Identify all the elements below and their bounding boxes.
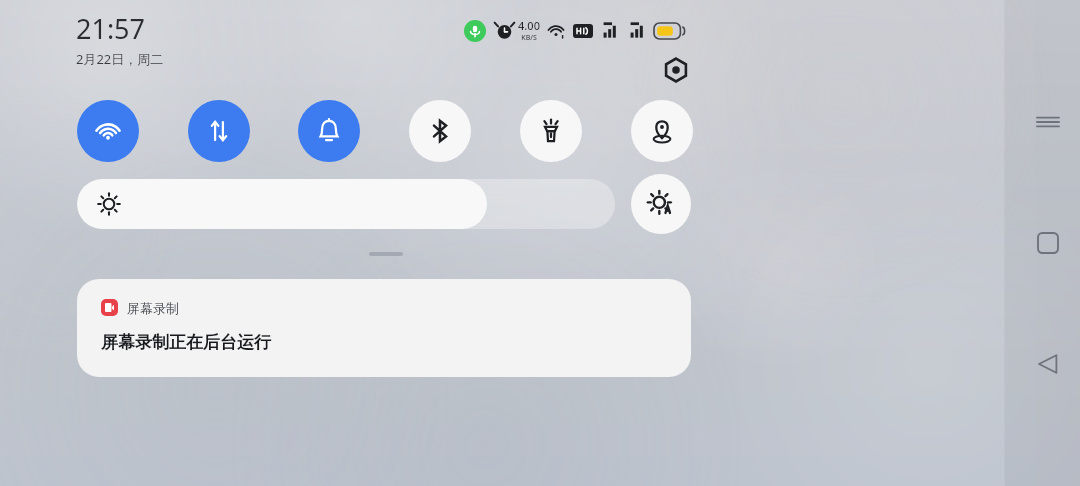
button[interactable]: Auto brightness (631, 174, 691, 234)
button[interactable]: Settings (654, 48, 698, 92)
button[interactable]: Brightness (77, 179, 615, 229)
staticText: 21:57 (76, 10, 146, 47)
button[interactable]: Home (1024, 219, 1072, 267)
button[interactable]: Mobile data (188, 100, 250, 162)
button[interactable]: Recents (1024, 98, 1072, 146)
button[interactable]: Ring mode (298, 100, 360, 162)
button[interactable]: Wi-Fi (77, 100, 139, 162)
staticText: 屏幕录制 (127, 300, 179, 316)
staticText: KB/S (521, 33, 537, 43)
button[interactable]: Flashlight (520, 100, 582, 162)
button[interactable]: Back (1024, 340, 1072, 388)
button[interactable]: 屏幕录制 (77, 279, 691, 377)
button[interactable]: Location (631, 100, 693, 162)
staticText: 4.00 (518, 18, 540, 33)
button[interactable]: Bluetooth (409, 100, 471, 162)
staticText: 屏幕录制正在后台运行 (101, 332, 271, 353)
staticText: 2月22日，周二 (76, 50, 164, 68)
